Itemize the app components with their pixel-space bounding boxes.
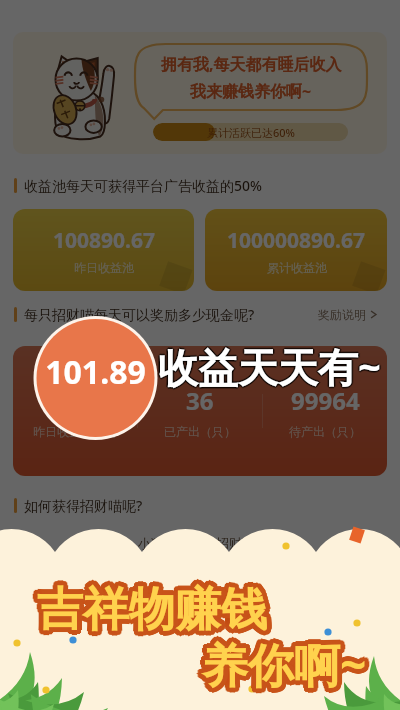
staticText: 吉祥物赚钱 bbox=[33, 583, 263, 641]
staticText: 养你啊~ bbox=[197, 633, 362, 696]
staticText: 养你啊~ bbox=[203, 635, 368, 698]
staticText: 收益天天有~ bbox=[159, 338, 382, 393]
staticText: 吉祥物赚钱 bbox=[33, 579, 263, 637]
staticText: 吉祥物赚钱 bbox=[37, 582, 267, 640]
staticText: 收益天天有~ bbox=[158, 341, 381, 396]
staticText: 吉祥物赚钱 bbox=[33, 581, 263, 639]
staticText: 吉祥物赚钱 bbox=[35, 580, 265, 638]
staticText: 养你啊~ bbox=[199, 634, 364, 697]
staticText: 吉祥物赚钱 bbox=[39, 578, 269, 636]
staticText: 养你啊~ bbox=[206, 631, 371, 694]
staticText: 养你啊~ bbox=[204, 637, 369, 700]
staticText: 吉祥物赚钱 bbox=[32, 581, 262, 639]
staticText: 吉祥物赚钱 bbox=[39, 582, 269, 640]
staticText: 养你啊~ bbox=[202, 628, 367, 691]
staticText: 养你啊~ bbox=[203, 633, 368, 696]
staticText: 吉祥物赚钱 bbox=[34, 577, 264, 635]
staticText: 养你啊~ bbox=[207, 633, 372, 696]
staticText: 吉祥物赚钱 bbox=[35, 578, 265, 636]
button[interactable]: 100890.67 bbox=[13, 209, 194, 291]
staticText: 吉祥物赚钱 bbox=[37, 580, 267, 638]
staticText: 养你啊~ bbox=[205, 637, 370, 700]
staticText: 养你啊~ bbox=[198, 636, 363, 699]
staticText: 吉祥物赚钱 bbox=[41, 584, 271, 642]
staticText: 养你啊~ bbox=[198, 630, 363, 693]
staticText: 吉祥物赚钱 bbox=[40, 577, 270, 635]
staticText: 养你啊~ bbox=[204, 630, 369, 693]
staticText: 吉祥物赚钱 bbox=[40, 583, 270, 641]
staticText: 吉祥物赚钱 bbox=[36, 577, 266, 635]
button[interactable]: 奖励说明 bbox=[318, 307, 377, 322]
staticText: 养你啊~ bbox=[204, 631, 369, 694]
staticText: 吉祥物赚钱 bbox=[39, 581, 269, 639]
staticText: 收益天天有~ bbox=[157, 339, 380, 394]
staticText: 养你啊~ bbox=[203, 634, 368, 697]
staticText: 养你啊~ bbox=[205, 636, 370, 699]
staticText: 吉祥物赚钱 bbox=[35, 585, 265, 643]
staticText: 如何获得招财喵呢? bbox=[24, 496, 143, 515]
staticText: 养你啊~ bbox=[200, 631, 365, 694]
staticText: 吉祥物赚钱 bbox=[35, 581, 265, 639]
staticText: 吉祥物赚钱 bbox=[34, 582, 264, 640]
staticText: 养你啊~ bbox=[206, 630, 371, 693]
staticText: 36 bbox=[186, 384, 214, 417]
staticText: 养你啊~ bbox=[206, 636, 371, 699]
staticText: 101.89 bbox=[45, 350, 146, 394]
staticText: 养你啊~ bbox=[203, 637, 368, 700]
staticText: 养你啊~ bbox=[204, 633, 369, 696]
staticText: 吉祥物赚钱 bbox=[38, 581, 268, 639]
staticText: 累计活跃已达60% bbox=[207, 125, 295, 140]
staticText: 养你啊~ bbox=[203, 630, 368, 693]
staticText: 吉祥物赚钱 bbox=[38, 578, 268, 636]
staticText: 吉祥物赚钱 bbox=[37, 577, 267, 635]
staticText: 养你啊~ bbox=[202, 630, 367, 693]
staticText: 吉祥物赚钱 bbox=[40, 580, 270, 638]
staticText: 吉祥物赚钱 bbox=[37, 581, 267, 639]
staticText: 100890.67 bbox=[53, 226, 155, 255]
staticText: 养你啊~ bbox=[202, 631, 367, 694]
staticText: 吉祥物赚钱 bbox=[40, 579, 270, 637]
staticText: 收益天天有~ bbox=[159, 339, 382, 394]
staticText: 吉祥物赚钱 bbox=[40, 582, 270, 640]
staticText: 养你啊~ bbox=[201, 636, 366, 699]
staticText: 吉祥物赚钱 bbox=[38, 577, 268, 635]
staticText: 养你啊~ bbox=[204, 634, 369, 697]
staticText: 吉祥物赚钱 bbox=[35, 582, 265, 640]
staticText: 收益天天有~ bbox=[156, 339, 379, 394]
staticText: 养你啊~ bbox=[198, 631, 363, 694]
staticText: 养你啊~ bbox=[203, 629, 368, 692]
button[interactable]: 拥有我,每天都有睡后收入 bbox=[13, 32, 387, 154]
staticText: 吉祥物赚钱 bbox=[33, 582, 263, 640]
staticText: 奖励说明 bbox=[318, 307, 366, 322]
staticText: 收益天天有~ bbox=[158, 337, 381, 392]
staticText: 吉祥物赚钱 bbox=[34, 585, 264, 643]
staticText: 养你啊~ bbox=[202, 633, 367, 696]
staticText: 吉祥物赚钱 bbox=[41, 581, 271, 639]
staticText: 养你啊~ bbox=[201, 631, 366, 694]
staticText: 养你啊~ bbox=[202, 635, 367, 698]
staticText: 吉祥物赚钱 bbox=[39, 577, 269, 635]
staticText: 吉祥物赚钱 bbox=[37, 583, 267, 641]
staticText: 养你啊~ bbox=[199, 633, 364, 696]
staticText: 养你啊~ bbox=[200, 633, 365, 696]
staticText: 吉祥物赚钱 bbox=[37, 579, 267, 637]
staticText: 养你啊~ bbox=[202, 638, 367, 701]
staticText: 吉祥物赚钱 bbox=[37, 581, 267, 639]
button[interactable]: 100000890.67 bbox=[205, 209, 387, 291]
staticText: 养你啊~ bbox=[204, 629, 369, 692]
staticText: 昨日收益(元/只) bbox=[33, 423, 117, 439]
staticText: 养你啊~ bbox=[198, 633, 363, 696]
staticText: 收益天天有~ bbox=[157, 338, 380, 393]
staticText: 养你啊~ bbox=[199, 635, 364, 698]
staticText: 养你啊~ bbox=[205, 634, 370, 697]
staticText: 养你啊~ bbox=[200, 634, 365, 697]
staticText: 吉祥物赚钱 bbox=[40, 578, 270, 636]
staticText: 养你啊~ bbox=[202, 629, 367, 692]
staticText: 养你啊~ bbox=[204, 635, 369, 698]
staticText: 养你啊~ bbox=[201, 633, 366, 696]
staticText: 吉祥物赚钱 bbox=[39, 585, 269, 643]
staticText: 收益天天有~ bbox=[158, 339, 381, 394]
staticText: 吉祥物赚钱 bbox=[35, 583, 265, 641]
staticText: 养你啊~ bbox=[202, 633, 367, 696]
staticText: 养你啊~ bbox=[205, 632, 370, 695]
